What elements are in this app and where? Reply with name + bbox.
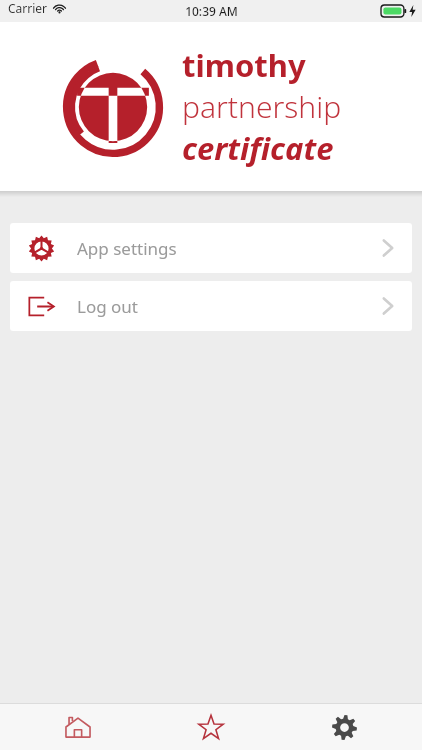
staticText: Carrier	[8, 0, 48, 16]
button[interactable]: Settings	[289, 704, 399, 750]
staticText: certificate	[182, 127, 334, 169]
button[interactable]: Favourites	[156, 704, 266, 750]
staticText: App settings	[77, 237, 177, 260]
button[interactable]: App settings	[10, 223, 412, 273]
staticText: partnership	[182, 86, 342, 127]
button[interactable]: Log out	[10, 281, 412, 331]
staticText: timothy	[182, 44, 306, 86]
button[interactable]: Home	[23, 704, 133, 750]
staticText: 10:39 AM	[185, 3, 238, 19]
staticText: Log out	[77, 295, 138, 318]
